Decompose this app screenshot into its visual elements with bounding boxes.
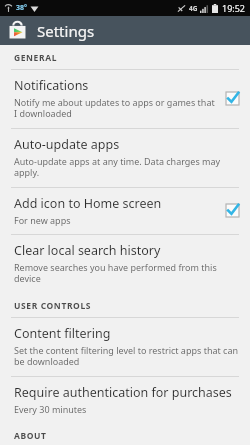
staticText: 4G <box>189 4 198 13</box>
button[interactable]: Toggle setting <box>225 203 240 218</box>
staticText: Auto-update apps <box>14 136 120 153</box>
staticText: Notifications <box>14 77 89 94</box>
staticText: ABOUT <box>14 430 47 442</box>
staticText: Clear local search history <box>14 242 161 259</box>
staticText: Auto-update apps at any time. Data charg… <box>14 155 240 179</box>
staticText: Set the content filtering level to restr… <box>14 344 240 368</box>
button[interactable]: Notifications <box>0 70 250 128</box>
staticText: USER CONTROLS <box>14 300 92 312</box>
staticText: 38° <box>16 3 27 13</box>
button[interactable]: Toggle setting <box>225 91 240 106</box>
staticText: Settings <box>37 21 95 41</box>
staticText: Remove searches you have performed from … <box>14 261 240 285</box>
button[interactable]: Add icon to Home screen <box>0 188 250 234</box>
button[interactable]: Clear local search history <box>0 235 250 293</box>
staticText: Notify me about updates to apps or games… <box>14 96 217 120</box>
staticText: Add icon to Home screen <box>14 195 162 212</box>
button[interactable]: Require authentication for purchases <box>0 377 250 423</box>
staticText: Require authentication for purchases <box>14 384 232 401</box>
staticText: Every 30 minutes <box>14 403 87 415</box>
button[interactable]: Content filtering <box>0 318 250 376</box>
staticText: For new apps <box>14 214 71 226</box>
staticText: GENERAL <box>14 52 57 64</box>
staticText: Content filtering <box>14 325 111 342</box>
button[interactable]: Auto-update apps <box>0 129 250 187</box>
staticText: 19:52 <box>222 2 246 14</box>
